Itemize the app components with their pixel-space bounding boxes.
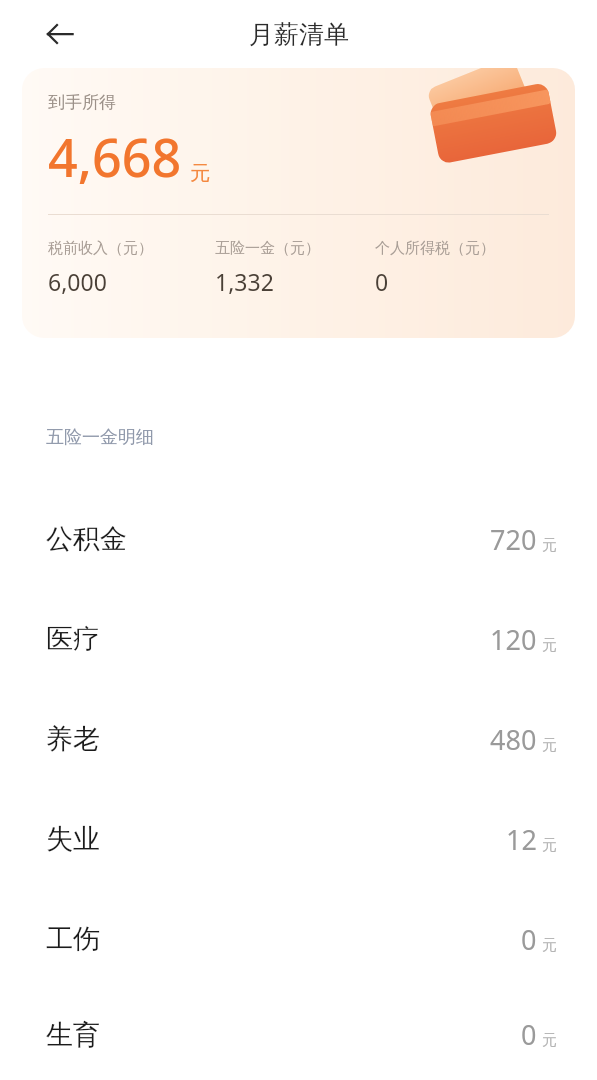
- staticText: 0: [375, 266, 389, 297]
- staticText: 元: [542, 736, 557, 755]
- staticText: 月薪清单: [249, 19, 349, 50]
- button[interactable]: 生育: [0, 989, 597, 1080]
- staticText: 4,668: [48, 121, 182, 192]
- button[interactable]: 公积金: [0, 489, 597, 589]
- button[interactable]: 到手所得: [22, 68, 575, 338]
- staticText: 元: [542, 836, 557, 855]
- staticText: 元: [542, 936, 557, 955]
- staticText: 480: [490, 721, 537, 758]
- staticText: 养老: [46, 722, 100, 756]
- staticText: 0: [521, 1016, 537, 1053]
- staticText: 12: [506, 821, 537, 858]
- button[interactable]: Back: [32, 6, 88, 62]
- staticText: 个人所得税（元）: [375, 239, 495, 258]
- staticText: 元: [542, 636, 557, 655]
- staticText: 五险一金明细: [46, 426, 154, 449]
- staticText: 生育: [46, 1018, 100, 1052]
- button[interactable]: 养老: [0, 689, 597, 789]
- button[interactable]: 医疗: [0, 589, 597, 689]
- staticText: 1,332: [215, 266, 274, 297]
- staticText: 医疗: [46, 622, 100, 656]
- button[interactable]: 失业: [0, 789, 597, 889]
- button[interactable]: 工伤: [0, 889, 597, 989]
- staticText: 元: [542, 536, 557, 555]
- staticText: 0: [521, 921, 537, 958]
- staticText: 失业: [46, 822, 100, 856]
- staticText: 到手所得: [48, 92, 116, 113]
- staticText: 五险一金（元）: [215, 239, 320, 258]
- staticText: 工伤: [46, 922, 100, 956]
- staticText: 公积金: [46, 522, 127, 556]
- staticText: 元: [190, 161, 210, 186]
- staticText: 元: [542, 1031, 557, 1050]
- staticText: 720: [490, 521, 537, 558]
- staticText: 6,000: [48, 266, 107, 297]
- staticText: 120: [490, 621, 537, 658]
- staticText: 税前收入（元）: [48, 239, 153, 258]
